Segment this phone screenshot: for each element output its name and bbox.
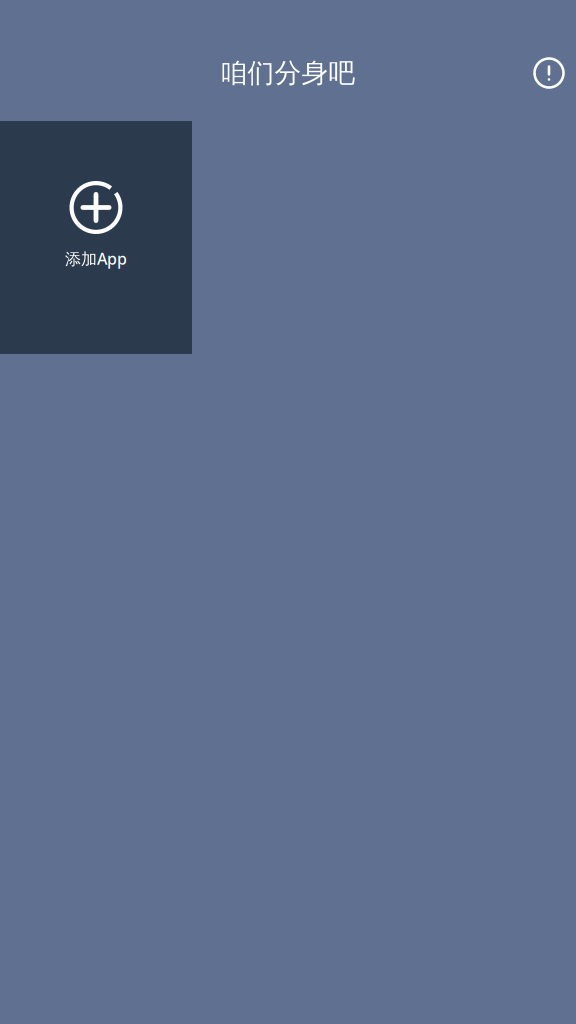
staticText: 咱们分身吧 <box>220 57 355 89</box>
button[interactable]: About <box>527 51 571 95</box>
button[interactable]: 添加App <box>0 121 192 354</box>
staticText: 添加App <box>65 248 127 269</box>
